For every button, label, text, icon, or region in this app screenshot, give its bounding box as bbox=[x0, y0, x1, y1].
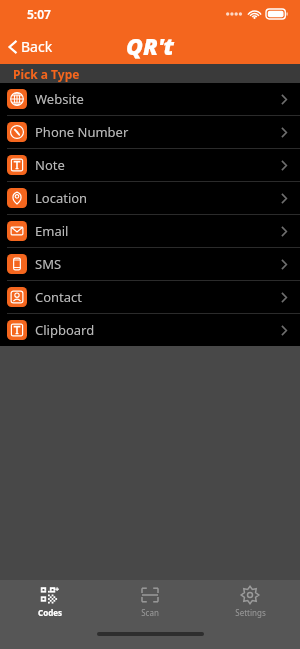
staticText: 5:07 bbox=[27, 6, 51, 22]
button[interactable]: Clipboard bbox=[0, 314, 300, 346]
staticText: Back bbox=[21, 37, 53, 56]
button[interactable]: Settings bbox=[200, 580, 300, 623]
button[interactable]: Contact bbox=[0, 281, 300, 314]
button[interactable]: Codes bbox=[0, 580, 100, 623]
staticText: Phone Number bbox=[35, 123, 129, 141]
staticText: Email bbox=[35, 222, 69, 240]
staticText: Settings bbox=[235, 607, 266, 618]
staticText: QR't bbox=[126, 30, 174, 61]
staticText: Scan bbox=[141, 607, 159, 618]
staticText: Note bbox=[35, 156, 65, 174]
staticText: Location bbox=[35, 189, 88, 207]
staticText: Website bbox=[35, 90, 84, 108]
button[interactable]: Email bbox=[0, 215, 300, 248]
staticText: Clipboard bbox=[35, 321, 95, 339]
button[interactable]: Phone Number bbox=[0, 116, 300, 149]
staticText: Contact bbox=[35, 288, 83, 306]
staticText: Codes bbox=[38, 607, 62, 618]
button[interactable]: Scan bbox=[100, 580, 200, 623]
staticText: SMS bbox=[35, 255, 62, 273]
button[interactable]: Website bbox=[0, 83, 300, 116]
button[interactable]: SMS bbox=[0, 248, 300, 281]
button[interactable]: Note bbox=[0, 149, 300, 182]
button[interactable]: Location bbox=[0, 182, 300, 215]
staticText: Pick a Type bbox=[13, 66, 80, 82]
button[interactable]: Back bbox=[0, 34, 61, 59]
